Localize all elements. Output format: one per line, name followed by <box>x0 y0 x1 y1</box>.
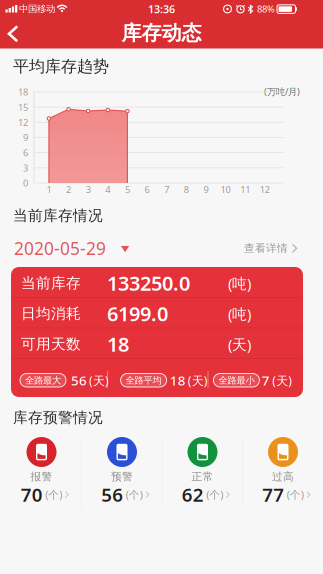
staticText: 70 <box>21 482 43 507</box>
staticText: 查看详情 <box>244 242 288 255</box>
staticText: 6 <box>144 183 149 196</box>
staticText: 当前库存情况 <box>13 207 103 225</box>
staticText: 库存动态 <box>121 21 201 45</box>
staticText: 当前库存 <box>21 274 81 292</box>
staticText: (吨) <box>228 304 251 324</box>
staticText: 7 <box>262 371 270 389</box>
staticText: 18 <box>170 371 186 389</box>
staticText: 18 <box>18 86 28 98</box>
staticText: 1 <box>46 183 51 196</box>
staticText: 5 <box>125 183 130 196</box>
staticText: (个) <box>206 487 223 502</box>
staticText: 0 <box>23 177 28 189</box>
staticText: 9 <box>203 183 208 196</box>
staticText: 中国移动 <box>19 3 55 15</box>
staticText: (个) <box>126 487 143 502</box>
staticText: 2020-05-29 <box>14 237 106 260</box>
button[interactable]: 选择日期 <box>0 235 150 261</box>
staticText: (天) <box>272 373 292 388</box>
staticText: 6199.0 <box>107 300 168 327</box>
staticText: 12 <box>260 183 270 196</box>
staticText: 88% <box>257 3 275 15</box>
staticText: 过高 <box>272 470 294 483</box>
staticText: 56 <box>71 371 87 389</box>
staticText: (天) <box>188 373 208 388</box>
button[interactable]: 预警 <box>83 432 161 510</box>
staticText: 全路平均 <box>126 375 162 386</box>
staticText: 56 <box>101 482 123 507</box>
staticText: 6 <box>23 146 28 159</box>
staticText: (个) <box>287 487 304 502</box>
button[interactable]: 报警 <box>2 432 80 510</box>
staticText: 11 <box>240 183 250 196</box>
staticText: 8 <box>184 183 189 196</box>
staticText: 133250.0 <box>107 270 190 296</box>
staticText: 平均库存趋势 <box>13 57 109 76</box>
staticText: 日均消耗 <box>21 304 81 322</box>
staticText: 正常 <box>191 470 213 483</box>
staticText: 62 <box>182 482 204 507</box>
staticText: 15 <box>18 101 28 113</box>
staticText: 18 <box>107 331 129 357</box>
staticText: 3 <box>23 162 28 174</box>
staticText: 77 <box>262 482 284 507</box>
staticText: 3 <box>86 183 91 196</box>
staticText: 12 <box>18 116 28 128</box>
staticText: 10 <box>221 183 231 196</box>
staticText: 库存预警情况 <box>13 409 103 427</box>
staticText: 全路最大 <box>25 375 61 386</box>
staticText: 7 <box>164 183 169 196</box>
staticText: (吨) <box>228 274 251 293</box>
staticText: 预警 <box>111 470 133 483</box>
staticText: 全路最小 <box>218 375 254 386</box>
staticText: 2 <box>66 183 71 196</box>
staticText: (天) <box>228 335 251 354</box>
button[interactable]: 过高 <box>244 432 322 510</box>
staticText: (万吨/月) <box>264 85 300 98</box>
button[interactable]: 查看详情 <box>223 235 303 261</box>
button[interactable]: 正常 <box>163 432 241 510</box>
staticText: 9 <box>23 131 28 144</box>
button[interactable]: Back <box>0 18 44 49</box>
staticText: 可用天数 <box>21 335 81 353</box>
staticText: (个) <box>45 487 62 502</box>
staticText: 13:36 <box>148 2 175 16</box>
staticText: 4 <box>105 183 110 196</box>
staticText: (天) <box>89 373 109 388</box>
staticText: 报警 <box>30 470 52 483</box>
